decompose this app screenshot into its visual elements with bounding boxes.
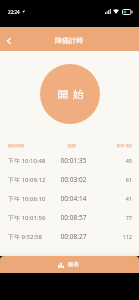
staticText: 77 (94, 214, 132, 221)
staticText: 00:01:35 (53, 156, 94, 165)
button[interactable]: 返回 (0, 27, 17, 51)
staticText: 圖表 (68, 261, 79, 268)
button[interactable]: 開始 (40, 64, 100, 124)
button[interactable]: 下午 10:01:56 (0, 208, 139, 227)
staticText: 45 (94, 157, 132, 164)
button[interactable]: 下午 10:06:10 (0, 189, 139, 208)
staticText: 下午 10:06:10 (8, 195, 53, 203)
staticText: 00:08:57 (53, 213, 94, 222)
button[interactable]: 圖表 (0, 256, 139, 273)
staticText: 陣痛計時 (55, 36, 84, 45)
staticText: 22:24 (8, 9, 20, 15)
staticText: 00:08:27 (53, 232, 94, 241)
staticText: 持續 (51, 143, 92, 148)
button[interactable]: 下午 10:10:48 (0, 151, 139, 170)
staticText: 00:04:14 (53, 194, 94, 203)
button[interactable]: 下午 9:52:58 (0, 227, 139, 246)
staticText: 61 (94, 176, 132, 183)
staticText: 下午 10:09:12 (8, 176, 53, 184)
staticText: 下午 10:10:48 (8, 157, 53, 165)
staticText: 開始時間 (8, 143, 51, 148)
staticText: 00:03:02 (53, 175, 94, 184)
staticText: 長度 (秒) (92, 143, 132, 149)
staticText: 開始 (55, 88, 86, 101)
staticText: 112 (94, 233, 132, 240)
staticText: 下午 9:52:58 (8, 233, 53, 241)
staticText: 下午 10:01:56 (8, 214, 53, 222)
button[interactable]: 下午 10:09:12 (0, 170, 139, 189)
staticText: 41 (94, 195, 132, 202)
